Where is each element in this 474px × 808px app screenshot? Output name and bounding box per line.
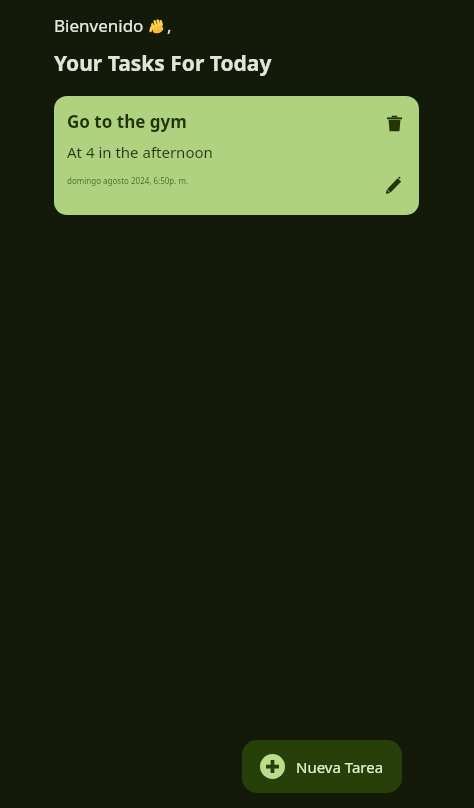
staticText: domingo agosto 2024, 6:50p. m. (67, 175, 189, 186)
staticText: Bienvenido (54, 14, 148, 37)
button[interactable]: Edit task (381, 172, 407, 198)
staticText: Nueva Tarea (296, 757, 384, 777)
button[interactable]: Go to the gym (54, 96, 419, 215)
staticText: Go to the gym (67, 110, 187, 133)
staticText: , (167, 14, 172, 37)
button[interactable]: Nueva Tarea (242, 740, 402, 793)
staticText: At 4 in the afternoon (67, 142, 213, 162)
staticText: Your Tasks For Today (54, 49, 272, 78)
button[interactable]: Delete task (381, 110, 407, 136)
